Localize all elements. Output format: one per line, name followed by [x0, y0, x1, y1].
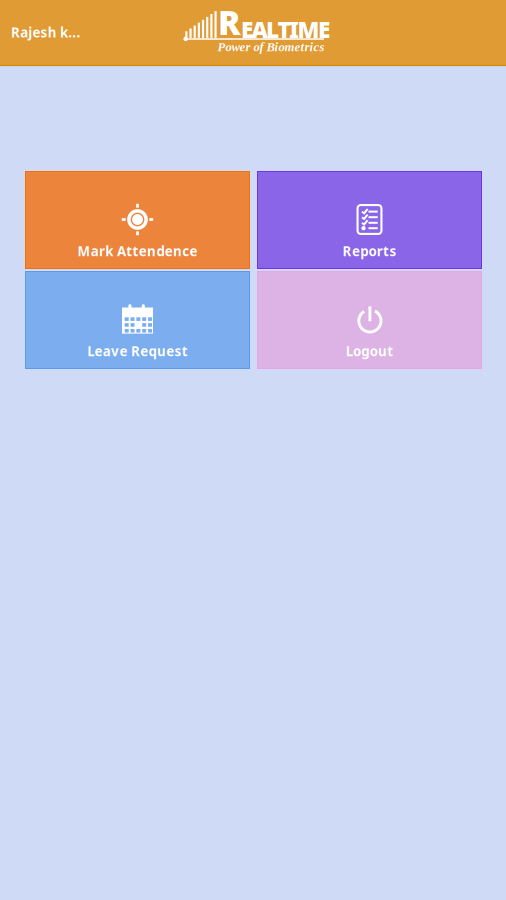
staticText: Logout [346, 342, 393, 360]
staticText: Rajesh k... [11, 23, 80, 41]
button[interactable]: Mark Attendence [25, 171, 250, 269]
staticText: Leave Request [87, 342, 188, 360]
button[interactable]: Reports [257, 171, 482, 269]
staticText: Reports [343, 242, 396, 260]
staticText: EALTIME [241, 14, 330, 44]
button[interactable]: Rajesh k... [0, 15, 86, 49]
staticText: Mark Attendence [77, 242, 198, 260]
staticText: R [218, 0, 241, 44]
button[interactable]: Leave Request [25, 271, 250, 369]
button[interactable]: Logout [257, 271, 482, 369]
staticText: Power of Biometrics [217, 40, 324, 54]
